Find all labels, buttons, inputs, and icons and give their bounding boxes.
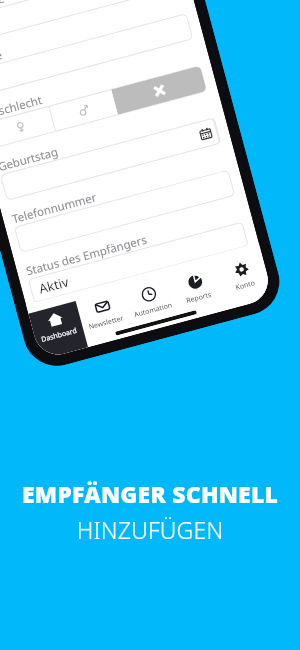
button[interactable]: Clear [111, 66, 207, 115]
staticText: Reports [185, 290, 213, 306]
staticText: Geburtstag [0, 144, 60, 175]
staticText: Vorname [0, 0, 7, 19]
other: Clear [154, 85, 165, 96]
staticText: Geschlecht [0, 92, 44, 123]
button[interactable]: Konto [212, 243, 273, 310]
button[interactable]: Newsletter [73, 280, 134, 347]
staticText: Telefonnummer [10, 189, 98, 227]
button[interactable] [49, 90, 118, 131]
button[interactable] [14, 170, 235, 252]
staticText: Aktiv [37, 272, 71, 298]
staticText: Newsletter [88, 313, 125, 332]
button[interactable] [0, 14, 193, 96]
staticText: Konto [234, 278, 256, 293]
button[interactable]: Aktiv [28, 222, 248, 303]
button[interactable]: Pick date [0, 118, 221, 200]
button[interactable] [0, 0, 179, 44]
button[interactable] [0, 106, 55, 148]
button[interactable]: Automation [120, 267, 181, 335]
staticText: EMPFÄNGER SCHNELL [0, 478, 300, 509]
staticText: HINZUFÜGEN [0, 514, 300, 545]
button[interactable]: Reports [166, 255, 227, 322]
other: Pick date [198, 126, 213, 141]
staticText: Status des Empfängers [24, 232, 149, 279]
staticText: Dashboard [40, 326, 79, 345]
button[interactable]: Dashboard [26, 292, 88, 360]
staticText: Automation [133, 300, 173, 320]
staticText: Name [0, 47, 4, 71]
